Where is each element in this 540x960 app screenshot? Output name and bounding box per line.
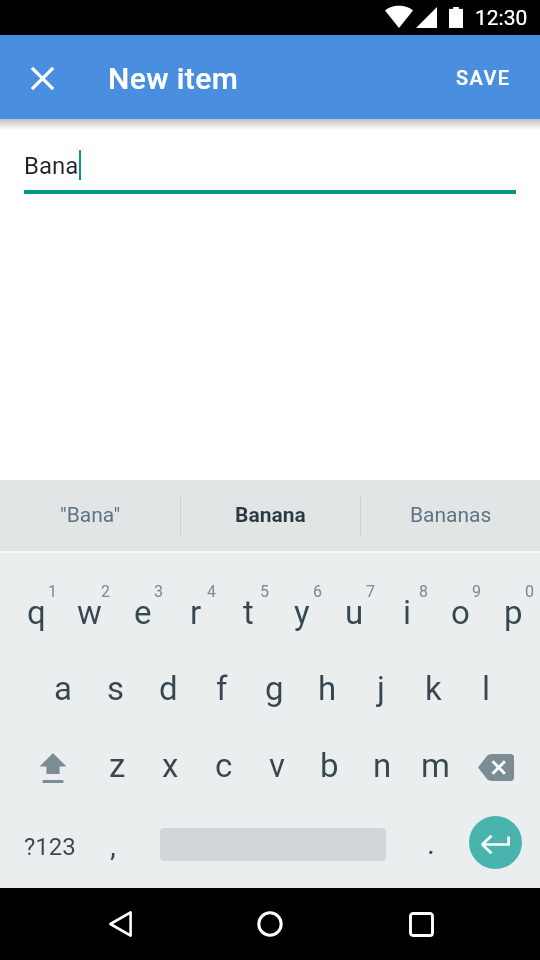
staticText: n [373, 746, 392, 785]
staticText: u [345, 593, 364, 632]
button[interactable]: a [36, 650, 89, 727]
button[interactable]: f [195, 650, 248, 727]
staticText: "Bana" [60, 503, 121, 528]
staticText: o [451, 593, 470, 632]
staticText: New item [108, 61, 239, 96]
staticText: 9 [472, 582, 481, 601]
button[interactable]: s [89, 650, 142, 727]
staticText: j [377, 669, 385, 708]
button[interactable]: Recents [391, 888, 451, 960]
staticText: y [294, 593, 310, 632]
button[interactable]: 4 [169, 573, 222, 650]
staticText: i [403, 593, 412, 632]
button[interactable]: 5 [222, 573, 275, 650]
button[interactable]: Enter [456, 804, 535, 881]
button[interactable]: 6 [275, 573, 328, 650]
staticText: 0 [525, 582, 534, 601]
staticText: 8 [419, 582, 428, 601]
button[interactable]: x [144, 727, 197, 804]
button[interactable]: 0 [487, 573, 540, 650]
staticText: v [269, 746, 285, 785]
button[interactable]: 9 [434, 573, 487, 650]
button[interactable]: 3 [116, 573, 169, 650]
staticText: h [318, 669, 337, 708]
staticText: ?123 [24, 833, 76, 861]
staticText: a [54, 669, 72, 708]
button[interactable]: Space [140, 804, 406, 881]
staticText: d [159, 669, 178, 708]
button[interactable]: SAVE [431, 35, 540, 119]
staticText: e [134, 593, 152, 632]
button[interactable]: v [250, 727, 303, 804]
button[interactable]: l [460, 650, 513, 727]
button[interactable]: m [409, 727, 462, 804]
button[interactable]: g [248, 650, 301, 727]
button[interactable]: 8 [381, 573, 434, 650]
button[interactable]: . [406, 804, 456, 881]
staticText: w [77, 593, 102, 632]
staticText: l [482, 669, 491, 708]
button[interactable]: k [407, 650, 460, 727]
staticText: Banana [235, 503, 306, 528]
staticText: Bananas [410, 503, 492, 528]
staticText: r [190, 593, 202, 632]
staticText: 3 [154, 582, 163, 601]
staticText: , [110, 828, 116, 863]
staticText: 4 [207, 582, 216, 601]
staticText: t [243, 593, 254, 632]
button[interactable]: ?123 [10, 804, 90, 881]
staticText: 1 [48, 582, 57, 601]
button[interactable]: Shift [26, 727, 79, 804]
button[interactable]: Close [0, 35, 84, 119]
button[interactable]: Bananas [361, 480, 540, 551]
staticText: b [320, 746, 339, 785]
staticText: z [109, 746, 126, 785]
staticText: k [425, 669, 442, 708]
staticText: m [421, 746, 450, 785]
staticText: g [265, 669, 284, 708]
button[interactable]: n [356, 727, 409, 804]
staticText: c [215, 746, 233, 785]
staticText: x [162, 746, 179, 785]
button[interactable]: j [354, 650, 407, 727]
staticText: s [107, 669, 125, 708]
staticText: f [216, 669, 228, 708]
staticText: Bana [24, 152, 79, 180]
button[interactable]: c [197, 727, 250, 804]
button[interactable]: z [91, 727, 144, 804]
button[interactable]: b [303, 727, 356, 804]
button[interactable]: d [142, 650, 195, 727]
staticText: p [504, 593, 523, 632]
staticText: q [27, 593, 46, 632]
button[interactable]: h [301, 650, 354, 727]
button[interactable]: 1 [10, 573, 63, 650]
staticText: 2 [101, 582, 110, 601]
staticText: SAVE [456, 66, 511, 89]
staticText: 7 [366, 582, 375, 601]
staticText: 12:30 [475, 6, 528, 31]
button[interactable]: Banana [181, 480, 360, 551]
button[interactable]: , [90, 804, 136, 881]
button[interactable]: 7 [328, 573, 381, 650]
button[interactable]: Back [90, 888, 150, 960]
staticText: 5 [260, 582, 269, 601]
button[interactable]: 2 [63, 573, 116, 650]
button[interactable]: "Bana" [0, 480, 180, 551]
staticText: . [427, 826, 435, 861]
button[interactable]: Backspace [469, 727, 522, 804]
button[interactable]: Home [240, 888, 300, 960]
staticText: 6 [313, 582, 322, 601]
